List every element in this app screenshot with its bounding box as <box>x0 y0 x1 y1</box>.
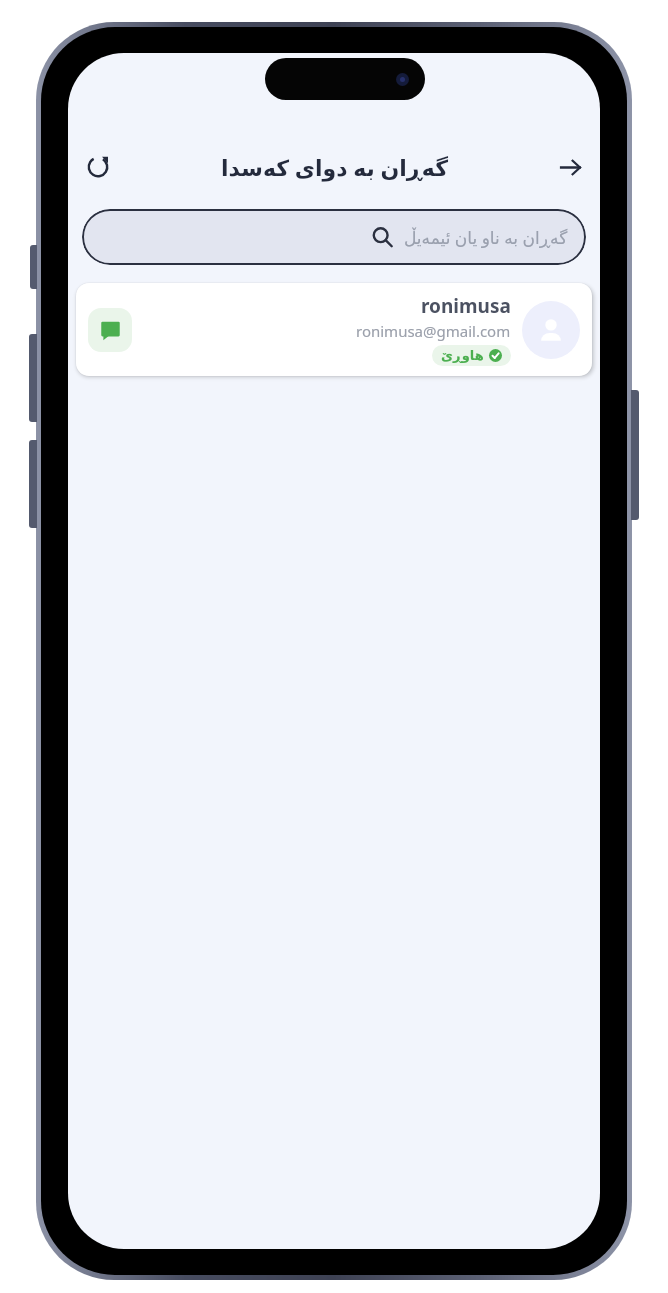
button[interactable]: گەڕان به‌ ناو یان ئیمەیڵ <box>82 209 586 265</box>
staticText: ronimusa <box>421 293 511 319</box>
button[interactable]: Refresh <box>74 143 122 191</box>
staticText: گەڕان به‌ دوای که‌سدا <box>221 152 448 182</box>
button[interactable]: Message <box>88 308 132 352</box>
button[interactable]: Message <box>76 283 592 376</box>
staticText: ronimusa@gmail.com <box>356 321 511 341</box>
staticText: هاوڕێ <box>441 348 484 363</box>
staticText: گەڕان به‌ ناو یان ئیمەیڵ <box>404 226 568 249</box>
button[interactable]: Back <box>546 143 594 191</box>
